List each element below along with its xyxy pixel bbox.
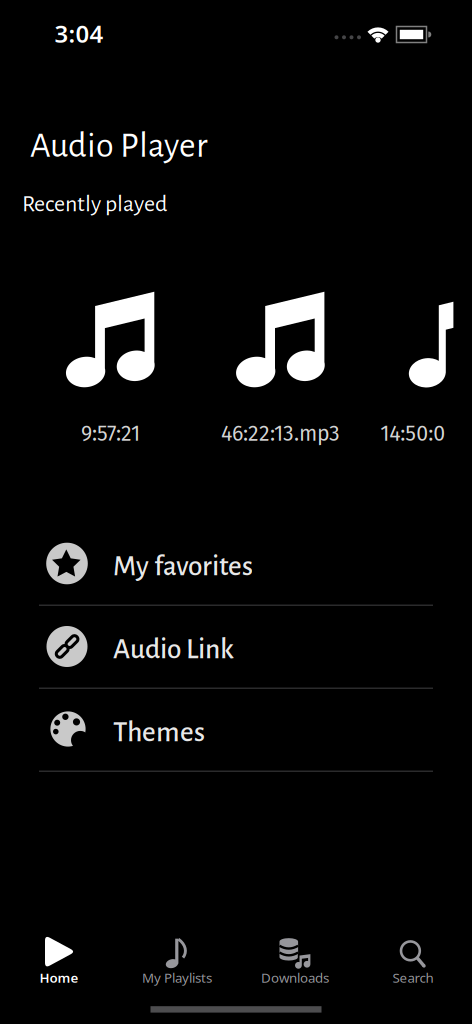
staticText: 46:22:13.mp3 — [221, 421, 340, 446]
button[interactable]: My Playlists — [118, 931, 236, 989]
staticText: Recently played — [22, 192, 167, 216]
staticText: 9:57:21 — [81, 421, 140, 446]
staticText: My favorites — [113, 552, 253, 581]
staticText: 3:04 — [54, 18, 103, 49]
staticText: Audio Link — [113, 635, 234, 664]
staticText: 14:50:0 — [380, 421, 445, 446]
staticText: Themes — [113, 718, 205, 747]
button[interactable]: Downloads — [236, 931, 354, 989]
button[interactable]: 14:50:0 — [380, 302, 454, 446]
staticText: Downloads — [261, 969, 329, 986]
staticText: Audio Player — [30, 128, 208, 164]
button[interactable]: 46:22:13.mp3 — [221, 292, 340, 446]
button[interactable]: My favorites — [0, 522, 472, 605]
button[interactable]: Themes — [0, 688, 472, 771]
button[interactable]: Audio Link — [0, 605, 472, 688]
button[interactable]: 9:57:21 — [66, 292, 155, 446]
staticText: Home — [39, 969, 78, 986]
button[interactable]: Home — [0, 931, 118, 989]
button[interactable]: Search — [354, 931, 472, 989]
staticText: Search — [392, 969, 433, 986]
staticText: My Playlists — [142, 969, 212, 986]
